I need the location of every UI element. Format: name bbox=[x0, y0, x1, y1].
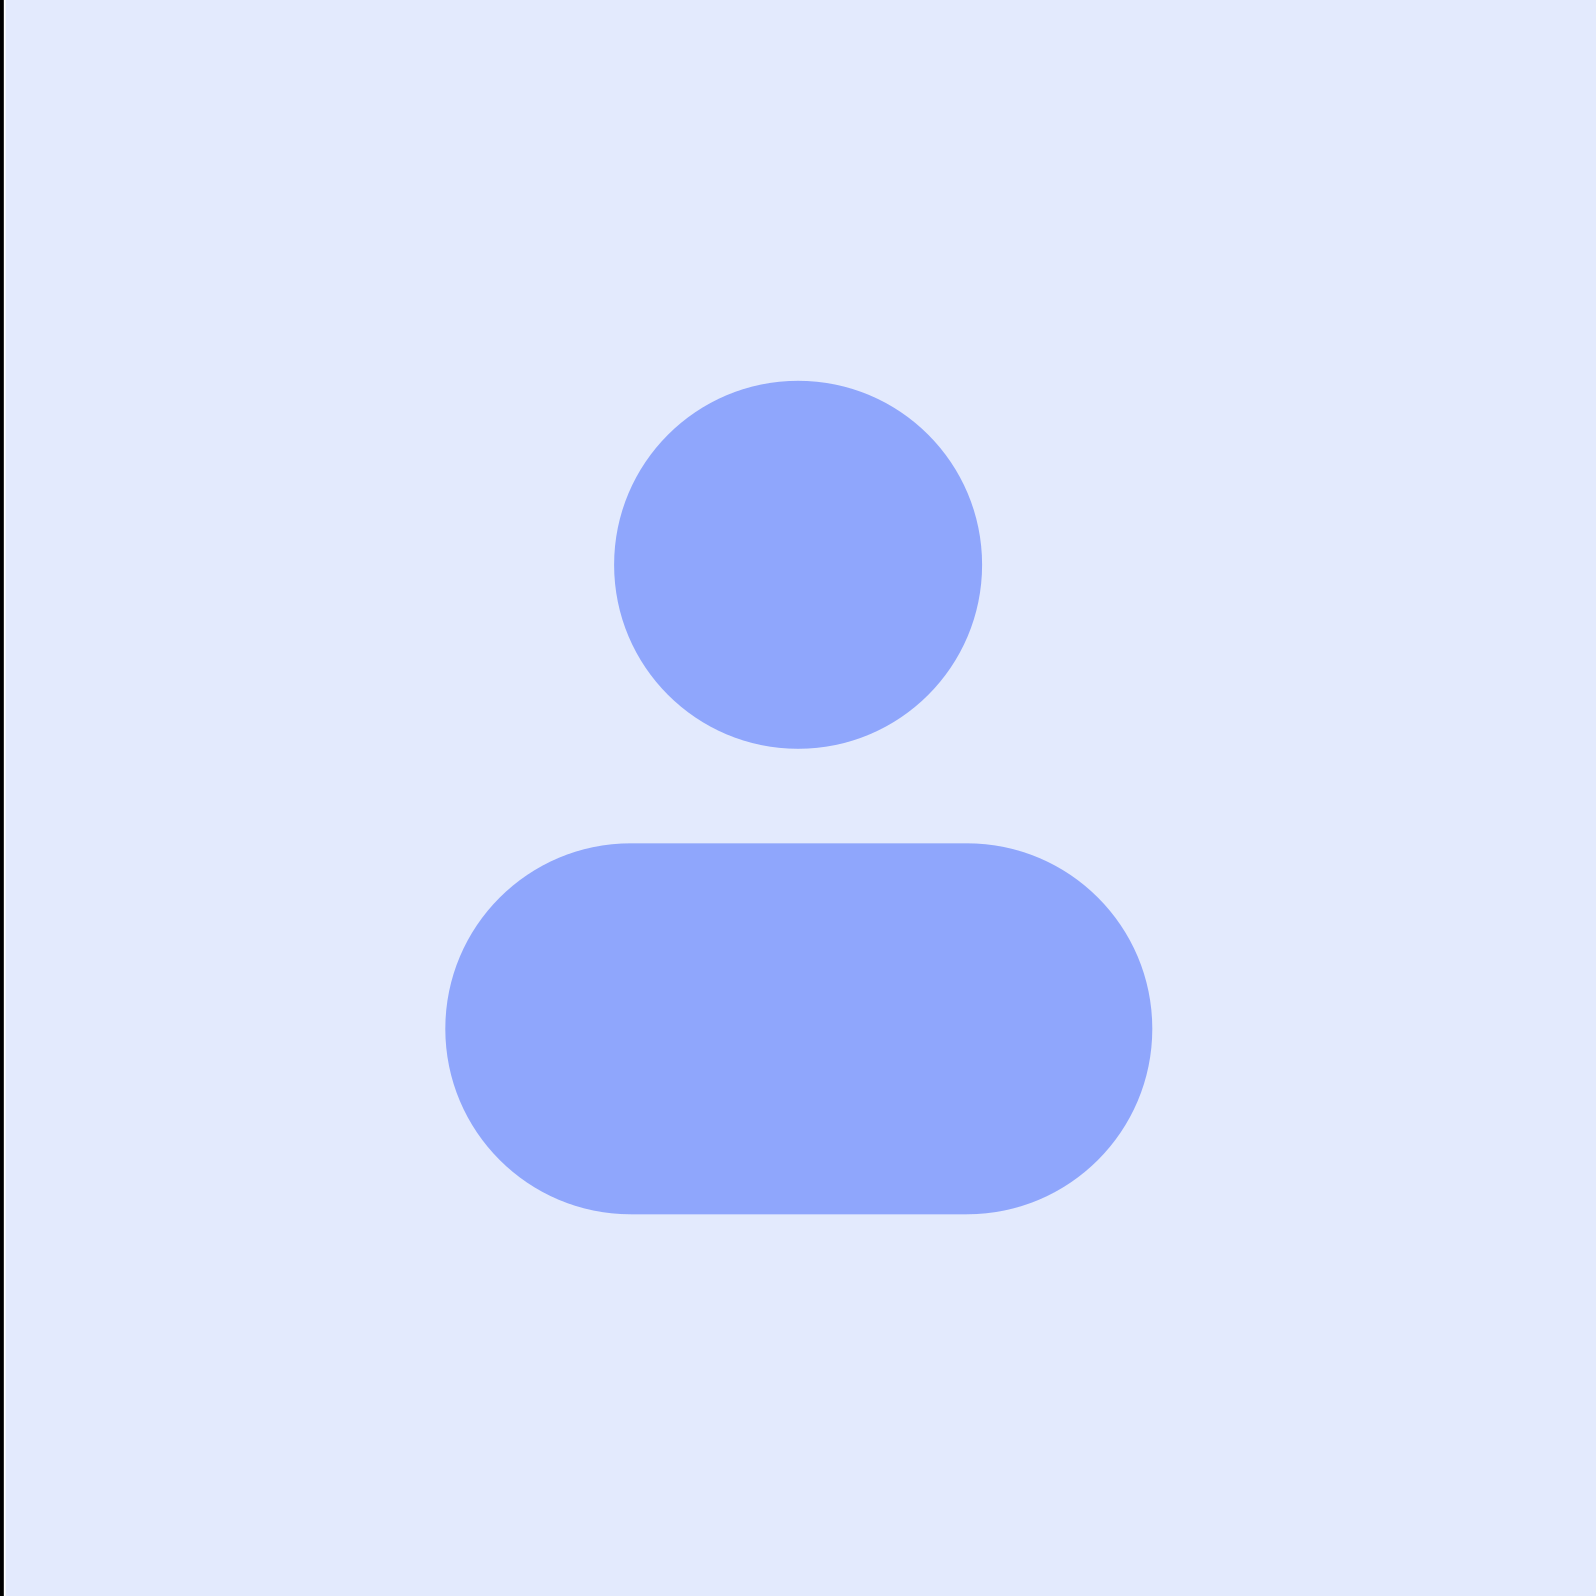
button[interactable]: Profile photo bbox=[445, 381, 1152, 1214]
